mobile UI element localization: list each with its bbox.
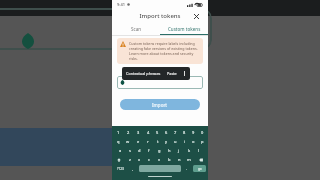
button[interactable]: 9 — [189, 128, 198, 137]
staticText: c — [148, 157, 150, 162]
staticText: Import — [152, 102, 168, 108]
button[interactable]: 0 — [198, 128, 207, 137]
staticText: p — [201, 139, 204, 144]
staticText: h — [168, 148, 171, 153]
staticText: x — [138, 157, 141, 162]
button[interactable]: j — [174, 146, 184, 155]
staticText: 5 — [156, 130, 159, 135]
button[interactable]: w — [123, 137, 133, 146]
staticText: 3 — [137, 130, 140, 135]
button[interactable]: z — [125, 155, 134, 164]
staticText: b — [168, 157, 171, 162]
button[interactable]: Paste — [167, 71, 177, 76]
button[interactable]: e — [133, 137, 143, 146]
staticText: m — [187, 157, 191, 162]
button[interactable] — [117, 76, 203, 89]
staticText: v — [158, 157, 161, 162]
button[interactable]: l — [194, 146, 204, 155]
staticText: d — [138, 148, 141, 153]
button[interactable]: 8 — [180, 128, 189, 137]
staticText: Contextual phrases — [126, 71, 161, 76]
button[interactable]: u — [171, 137, 180, 146]
button[interactable]: Space — [139, 165, 181, 172]
staticText: e — [137, 139, 140, 144]
staticText: Paste — [167, 71, 177, 76]
button[interactable]: Close — [191, 11, 202, 22]
staticText: y — [165, 139, 168, 144]
button[interactable]: Shift — [113, 155, 125, 164]
staticText: Custom tokens require labels including c… — [129, 41, 200, 61]
staticText: a — [119, 148, 122, 153]
button[interactable]: . — [182, 164, 192, 173]
staticText: Custom tokens — [168, 26, 201, 32]
staticText: 9:41 — [117, 2, 125, 7]
button[interactable]: Enter — [193, 165, 206, 172]
button[interactable]: , — [128, 164, 138, 173]
staticText: , — [132, 166, 134, 171]
button[interactable]: 3 — [133, 128, 143, 137]
button[interactable]: x — [134, 155, 144, 164]
button[interactable]: y — [162, 137, 171, 146]
button[interactable]: Backspace — [194, 155, 207, 164]
button[interactable]: 7 — [171, 128, 180, 137]
staticText: u — [174, 139, 177, 144]
button[interactable]: Custom tokens — [160, 23, 208, 35]
button[interactable]: m — [184, 155, 194, 164]
staticText: t — [157, 139, 159, 144]
staticText: l — [198, 148, 200, 153]
staticText: 6 — [165, 130, 168, 135]
button[interactable]: f — [144, 146, 154, 155]
button[interactable]: t — [153, 137, 162, 146]
staticText: 2 — [127, 130, 130, 135]
staticText: z — [129, 157, 131, 162]
staticText: g — [158, 148, 161, 153]
button[interactable]: d — [134, 146, 144, 155]
button[interactable]: ?123 — [113, 164, 128, 173]
staticText: s — [129, 148, 131, 153]
button[interactable]: b — [164, 155, 174, 164]
button[interactable]: q — [113, 137, 123, 146]
button[interactable]: h — [164, 146, 174, 155]
button[interactable]: More options — [182, 70, 186, 77]
button[interactable]: i — [180, 137, 189, 146]
button[interactable]: s — [125, 146, 134, 155]
button[interactable]: v — [154, 155, 164, 164]
button[interactable]: Contextual phrases — [126, 71, 161, 76]
button[interactable]: c — [144, 155, 154, 164]
staticText: j — [178, 148, 180, 153]
staticText: k — [188, 148, 191, 153]
staticText: Import tokens — [139, 12, 181, 20]
staticText: ?123 — [117, 167, 124, 171]
staticText: Scan — [131, 26, 141, 32]
button[interactable]: k — [184, 146, 194, 155]
staticText: n — [178, 157, 181, 162]
button[interactable]: a — [116, 146, 125, 155]
button[interactable]: Import — [120, 99, 200, 110]
staticText: . — [186, 166, 188, 171]
button[interactable]: 2 — [123, 128, 133, 137]
button[interactable]: 4 — [143, 128, 153, 137]
button[interactable]: g — [154, 146, 164, 155]
button[interactable]: r — [143, 137, 153, 146]
staticText: go — [198, 167, 202, 171]
button[interactable]: 1 — [113, 128, 123, 137]
staticText: q — [117, 139, 120, 144]
staticText: w — [126, 139, 130, 144]
staticText: 4 — [147, 130, 150, 135]
staticText: 0 — [201, 130, 204, 135]
staticText: i — [184, 139, 186, 144]
button[interactable]: Scan — [112, 23, 160, 35]
staticText: 7 — [174, 130, 177, 135]
staticText: 1 — [117, 130, 120, 135]
staticText: f — [148, 148, 150, 153]
button[interactable]: 6 — [162, 128, 171, 137]
button[interactable]: o — [189, 137, 198, 146]
staticText: 8 — [183, 130, 186, 135]
button[interactable]: n — [174, 155, 184, 164]
button[interactable]: p — [198, 137, 207, 146]
button[interactable]: 5 — [153, 128, 162, 137]
staticText: r — [147, 139, 149, 144]
staticText: 9 — [192, 130, 195, 135]
staticText: o — [192, 139, 195, 144]
